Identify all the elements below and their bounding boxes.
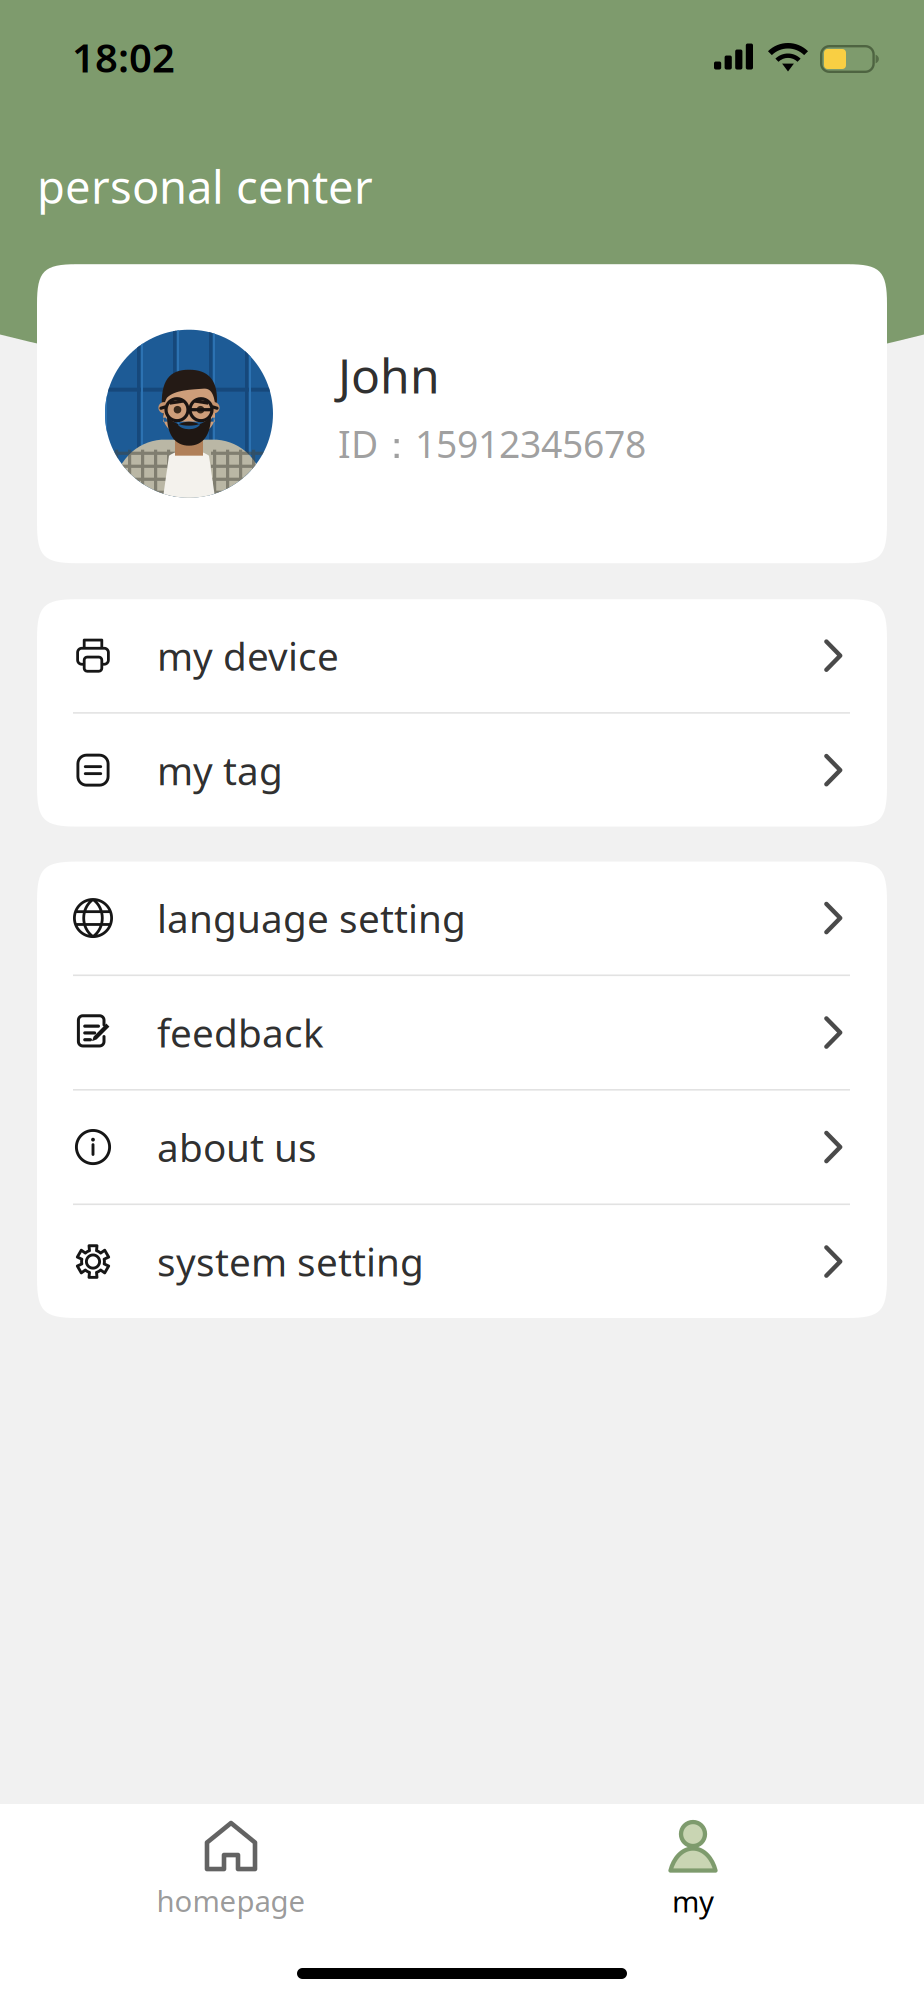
staticText: homepage <box>156 1881 305 1920</box>
button[interactable]: language setting <box>37 862 887 974</box>
staticText: personal center <box>37 156 373 216</box>
staticText: ID：15912345678 <box>338 419 646 468</box>
staticText: language setting <box>157 892 466 944</box>
button[interactable]: system setting <box>37 1205 887 1318</box>
staticText: my <box>672 1881 714 1920</box>
staticText: feedback <box>157 1007 324 1058</box>
staticText: system setting <box>157 1236 424 1287</box>
button[interactable]: feedback <box>37 976 887 1089</box>
button[interactable]: homepage <box>0 1811 462 1929</box>
staticText: John <box>338 343 440 407</box>
button[interactable]: my device <box>37 599 887 712</box>
staticText: my tag <box>157 744 283 796</box>
staticText: 18:02 <box>72 30 175 83</box>
button[interactable]: my <box>462 1811 924 1929</box>
staticText: about us <box>157 1121 317 1173</box>
staticText: my device <box>157 630 339 681</box>
button[interactable]: about us <box>37 1091 887 1203</box>
button[interactable]: my tag <box>37 714 887 827</box>
